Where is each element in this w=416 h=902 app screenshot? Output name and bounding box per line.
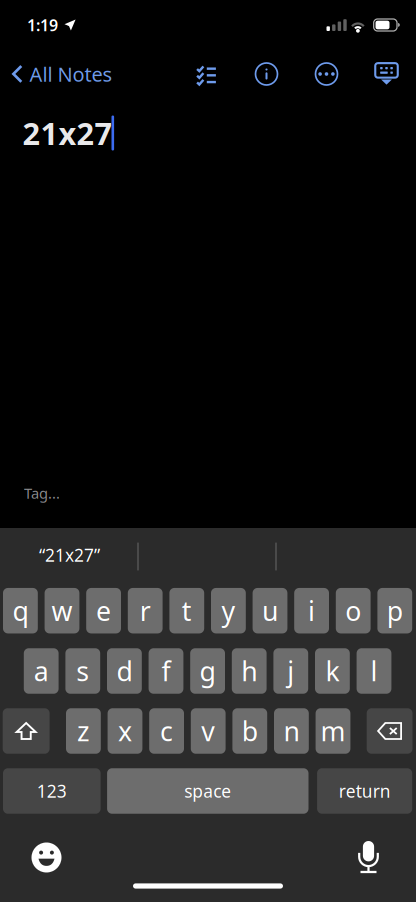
button[interactable]: k bbox=[315, 648, 350, 694]
button[interactable]: b bbox=[232, 708, 267, 754]
staticText: m bbox=[320, 713, 345, 749]
staticText: g bbox=[200, 653, 216, 689]
button[interactable]: i bbox=[294, 588, 329, 633]
staticText: n bbox=[283, 713, 299, 749]
button[interactable]: Dictate bbox=[345, 834, 391, 880]
staticText: 21x27 bbox=[22, 113, 112, 153]
button[interactable]: d bbox=[107, 648, 142, 694]
button[interactable]: h bbox=[232, 648, 267, 694]
button[interactable]: space bbox=[107, 768, 308, 814]
staticText: 1:19 bbox=[27, 14, 58, 36]
button[interactable]: Shift bbox=[3, 708, 50, 754]
button[interactable]: Checklist bbox=[176, 54, 236, 94]
staticText: a bbox=[34, 653, 49, 689]
staticText: s bbox=[76, 653, 89, 689]
staticText: l bbox=[370, 653, 377, 689]
button[interactable]: z bbox=[66, 708, 101, 754]
staticText: t bbox=[182, 593, 192, 628]
button[interactable]: Info bbox=[236, 54, 296, 94]
staticText: r bbox=[140, 593, 151, 628]
staticText: p bbox=[387, 593, 403, 628]
button[interactable]: “21x27” bbox=[1, 533, 138, 577]
button[interactable]: return bbox=[317, 768, 412, 814]
button[interactable]: e bbox=[86, 588, 121, 633]
button[interactable]: Delete bbox=[367, 708, 412, 754]
staticText: j bbox=[287, 653, 294, 689]
button[interactable]: More bbox=[296, 54, 356, 94]
button[interactable]: a bbox=[24, 648, 59, 694]
button[interactable]: t bbox=[169, 588, 204, 633]
staticText: e bbox=[96, 593, 111, 628]
button[interactable]: o bbox=[336, 588, 371, 633]
button[interactable]: 123 bbox=[3, 768, 101, 814]
staticText: space bbox=[184, 779, 231, 802]
button[interactable]: u bbox=[253, 588, 287, 633]
button[interactable]: m bbox=[316, 708, 350, 754]
staticText: o bbox=[345, 593, 361, 628]
staticText: v bbox=[201, 713, 215, 749]
staticText: “21x27” bbox=[39, 543, 100, 566]
staticText: Tag... bbox=[24, 483, 60, 503]
button[interactable]: l bbox=[357, 648, 391, 694]
button[interactable]: r bbox=[128, 588, 163, 633]
button[interactable]: x bbox=[108, 708, 142, 754]
staticText: y bbox=[221, 593, 235, 628]
staticText: u bbox=[262, 593, 278, 628]
button[interactable]: n bbox=[274, 708, 309, 754]
staticText: q bbox=[12, 593, 28, 628]
staticText: return bbox=[339, 779, 391, 802]
button[interactable]: v bbox=[191, 708, 226, 754]
staticText: d bbox=[116, 653, 132, 689]
button[interactable]: c bbox=[149, 708, 184, 754]
staticText: z bbox=[77, 713, 90, 749]
button[interactable]: j bbox=[273, 648, 308, 694]
button[interactable]: Hide Keyboard bbox=[356, 54, 416, 94]
staticText: b bbox=[242, 713, 258, 749]
staticText: k bbox=[325, 653, 339, 689]
button[interactable]: p bbox=[377, 588, 412, 633]
staticText: c bbox=[160, 713, 173, 749]
button[interactable]: f bbox=[149, 648, 183, 694]
staticText: All Notes bbox=[29, 61, 112, 87]
staticText: f bbox=[161, 653, 170, 689]
button[interactable]: w bbox=[45, 588, 79, 633]
button[interactable]: s bbox=[65, 648, 100, 694]
button[interactable]: q bbox=[3, 588, 38, 633]
button[interactable]: Emoji bbox=[23, 834, 69, 880]
button[interactable]: All Notes bbox=[1, 53, 124, 95]
staticText: w bbox=[51, 593, 72, 628]
staticText: h bbox=[241, 653, 257, 689]
button[interactable]: y bbox=[211, 588, 246, 633]
staticText: 123 bbox=[37, 779, 67, 802]
staticText: x bbox=[118, 713, 132, 749]
staticText: i bbox=[308, 593, 315, 628]
button[interactable]: g bbox=[190, 648, 225, 694]
